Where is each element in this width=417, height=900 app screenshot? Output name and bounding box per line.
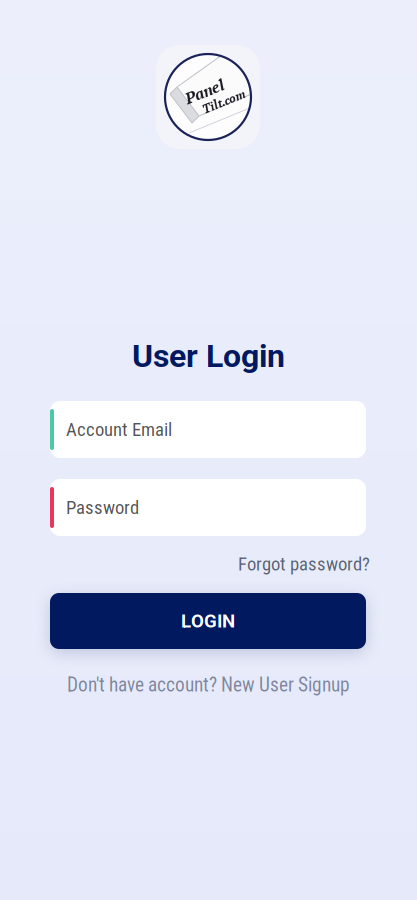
staticText: Password — [66, 497, 139, 518]
staticText: User Login — [132, 337, 285, 375]
button[interactable]: LOGIN — [50, 593, 366, 649]
staticText: Forgot password? — [238, 553, 370, 575]
button[interactable]: Forgot password? — [50, 553, 370, 575]
staticText: Panel — [186, 79, 227, 101]
staticText: LOGIN — [181, 610, 235, 632]
staticText: Tilt.com — [198, 99, 243, 115]
staticText: Account Email — [66, 419, 172, 440]
staticText: Don't have account? New User Signup — [67, 674, 350, 696]
button[interactable]: Don't have account? New User Signup — [0, 674, 417, 696]
